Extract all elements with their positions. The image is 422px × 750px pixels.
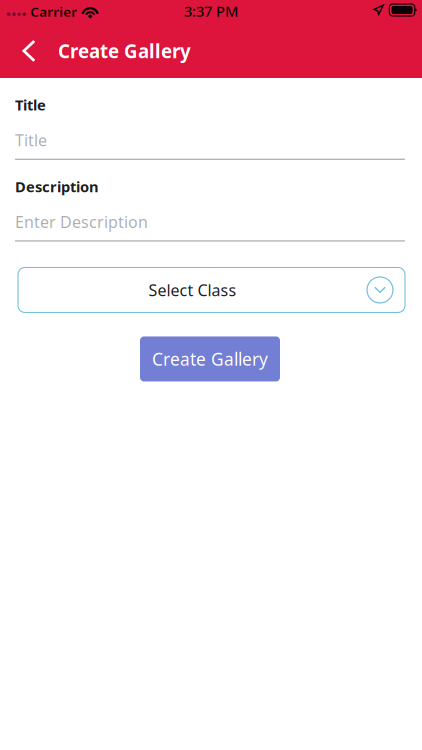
staticText: Title (15, 95, 46, 114)
staticText: Title (15, 129, 47, 151)
button[interactable]: Create Gallery (140, 336, 280, 381)
button[interactable]: Select Class (15, 267, 405, 312)
staticText: Select Class (148, 279, 236, 300)
button[interactable]: Back (7, 29, 51, 73)
staticText: Create Gallery (152, 347, 268, 370)
staticText: Description (15, 177, 99, 196)
staticText: Create Gallery (58, 39, 191, 63)
staticText: Carrier (30, 3, 77, 20)
staticText: Enter Description (15, 211, 148, 232)
staticText: 3:37 PM (184, 1, 238, 21)
